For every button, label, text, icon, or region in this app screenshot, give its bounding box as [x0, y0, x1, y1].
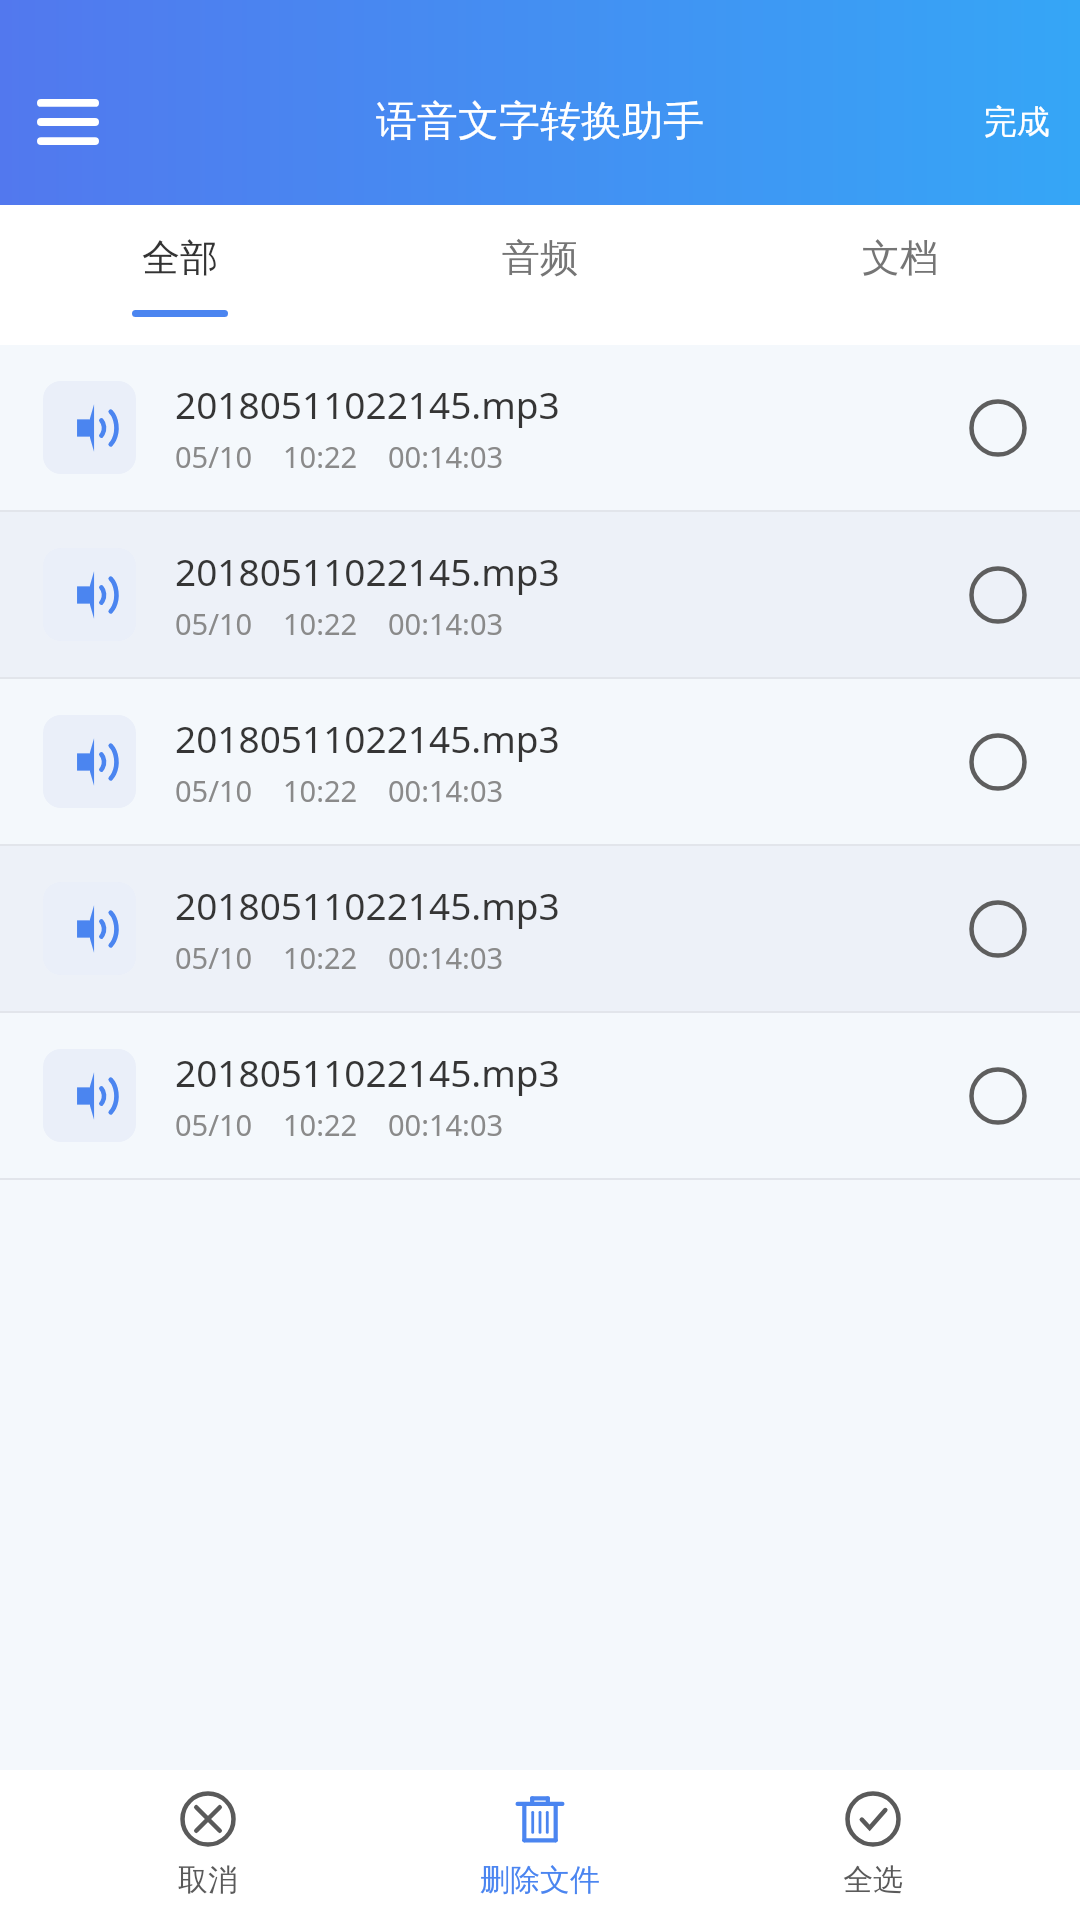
staticText: 完成: [984, 101, 1050, 143]
button[interactable]: 删除文件: [415, 1781, 665, 1909]
staticText: 文档: [862, 234, 938, 282]
staticText: 05/10: [175, 1105, 253, 1144]
staticText: 20180511022145.mp3: [175, 546, 560, 596]
staticText: 全选: [843, 1861, 903, 1899]
button[interactable]: 音频: [360, 205, 720, 345]
staticText: 05/10: [175, 938, 253, 977]
staticText: 00:14:03: [388, 437, 504, 476]
staticText: 全部: [142, 234, 218, 282]
button[interactable]: Select file: [943, 540, 1053, 650]
button[interactable]: 20180511022145.mp3: [0, 1013, 1080, 1178]
button[interactable]: 全选: [748, 1781, 998, 1909]
staticText: 删除文件: [480, 1861, 600, 1899]
button[interactable]: 20180511022145.mp3: [0, 512, 1080, 677]
staticText: 10:22: [283, 604, 358, 643]
staticText: 05/10: [175, 604, 253, 643]
staticText: 10:22: [283, 771, 358, 810]
button[interactable]: 取消: [83, 1781, 333, 1909]
staticText: 00:14:03: [388, 771, 504, 810]
button[interactable]: Select file: [943, 707, 1053, 817]
button[interactable]: 20180511022145.mp3: [0, 679, 1080, 844]
staticText: 20180511022145.mp3: [175, 880, 560, 930]
button[interactable]: 全部: [0, 205, 360, 345]
staticText: 05/10: [175, 771, 253, 810]
button[interactable]: Menu: [26, 80, 110, 164]
staticText: 音频: [502, 234, 578, 282]
staticText: 10:22: [283, 437, 358, 476]
button[interactable]: 文档: [720, 205, 1080, 345]
staticText: 05/10: [175, 437, 253, 476]
button[interactable]: 完成: [954, 85, 1080, 159]
staticText: 00:14:03: [388, 1105, 504, 1144]
staticText: 20180511022145.mp3: [175, 379, 560, 429]
button[interactable]: 20180511022145.mp3: [0, 345, 1080, 510]
button[interactable]: Select file: [943, 373, 1053, 483]
staticText: 20180511022145.mp3: [175, 1047, 560, 1097]
staticText: 10:22: [283, 1105, 358, 1144]
staticText: 10:22: [283, 938, 358, 977]
staticText: 取消: [178, 1861, 238, 1899]
button[interactable]: 20180511022145.mp3: [0, 846, 1080, 1011]
button[interactable]: Select file: [943, 1041, 1053, 1151]
button[interactable]: Select file: [943, 874, 1053, 984]
staticText: 语音文字转换助手: [376, 96, 704, 148]
staticText: 00:14:03: [388, 938, 504, 977]
staticText: 20180511022145.mp3: [175, 713, 560, 763]
staticText: 00:14:03: [388, 604, 504, 643]
